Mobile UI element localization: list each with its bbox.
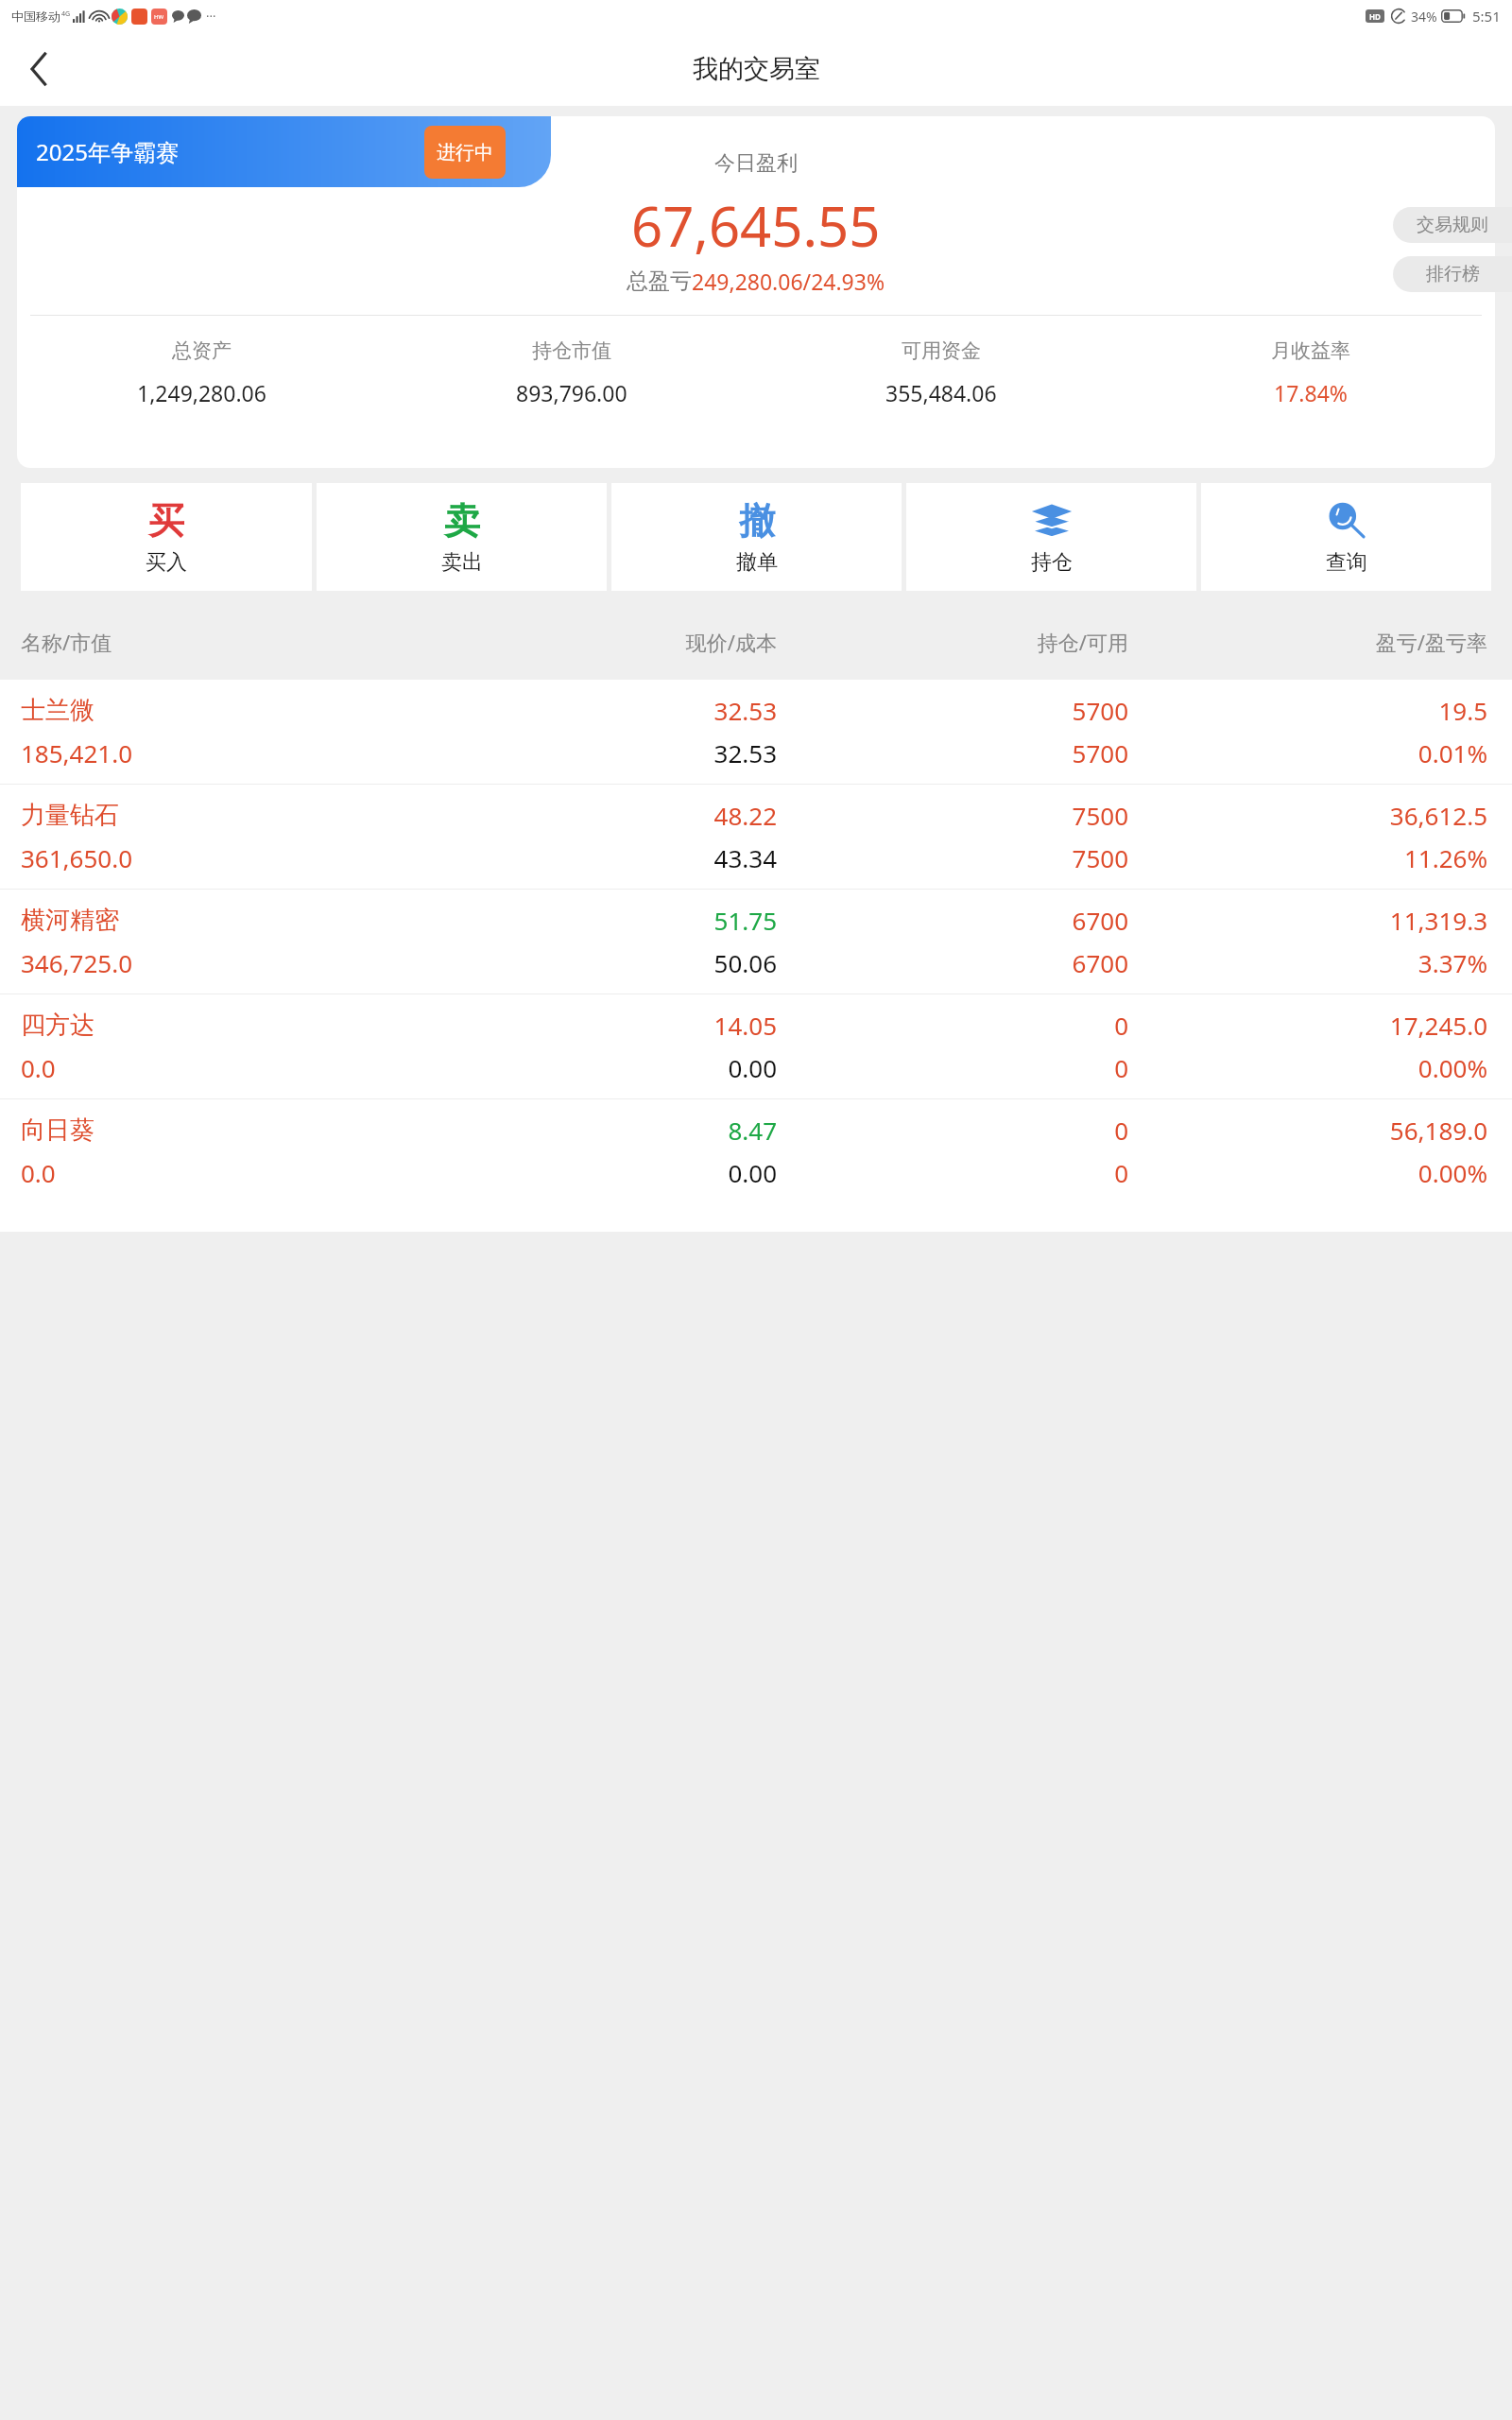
- staticText: 48.22: [418, 799, 777, 832]
- staticText: 今日盈利: [714, 150, 798, 177]
- button[interactable]: 买: [21, 483, 312, 591]
- staticText: 0: [777, 1156, 1128, 1189]
- button[interactable]: 2025年争霸赛: [17, 116, 551, 187]
- button[interactable]: 四方达: [0, 994, 1512, 1098]
- staticText: 四方达: [21, 1010, 418, 1041]
- staticText: 向日葵: [21, 1115, 418, 1146]
- staticText: 0.00: [418, 1051, 777, 1084]
- staticText: 0.0: [21, 1051, 418, 1084]
- staticText: 36,612.5: [1128, 799, 1487, 832]
- staticText: 893,796.00: [516, 378, 627, 407]
- button[interactable]: 交易规则: [1393, 207, 1512, 243]
- button[interactable]: 持仓: [906, 483, 1196, 591]
- staticText: 5700: [777, 694, 1128, 727]
- staticText: 0: [777, 1114, 1128, 1147]
- staticText: 总盈亏: [627, 268, 692, 295]
- staticText: 撤: [739, 498, 775, 544]
- staticText: 0.00%: [1128, 1156, 1487, 1189]
- staticText: 名称/市值: [21, 628, 418, 656]
- staticText: 现价/成本: [418, 628, 777, 656]
- staticText: 排行榜: [1426, 263, 1480, 285]
- button[interactable]: 撤: [611, 483, 902, 591]
- staticText: 我的交易室: [693, 53, 820, 85]
- staticText: 249,280.06/24.93%: [692, 267, 885, 296]
- staticText: 6700: [777, 946, 1128, 979]
- staticText: 0.01%: [1128, 736, 1487, 769]
- staticText: 56,189.0: [1128, 1114, 1487, 1147]
- staticText: 34%: [1411, 8, 1437, 26]
- staticText: 6700: [777, 904, 1128, 937]
- button[interactable]: Back: [17, 46, 62, 92]
- staticText: 买入: [146, 549, 187, 576]
- staticText: 11.26%: [1128, 841, 1487, 874]
- staticText: ···: [206, 8, 216, 25]
- staticText: 0.00: [418, 1156, 777, 1189]
- staticText: 11,319.3: [1128, 904, 1487, 937]
- staticText: 可用资金: [902, 338, 981, 363]
- staticText: HW: [154, 13, 164, 21]
- staticText: 4G: [61, 9, 71, 19]
- staticText: 中国移动: [11, 9, 60, 24]
- staticText: 1,249,280.06: [137, 378, 266, 407]
- staticText: 50.06: [418, 946, 777, 979]
- staticText: 0: [777, 1009, 1128, 1042]
- staticText: 2025年争霸赛: [36, 136, 179, 167]
- staticText: 17.84%: [1274, 378, 1348, 407]
- staticText: 5:51: [1472, 7, 1501, 26]
- staticText: 撤单: [736, 549, 778, 576]
- staticText: 月收益率: [1271, 338, 1350, 363]
- button[interactable]: 士兰微: [0, 680, 1512, 784]
- staticText: 5700: [777, 736, 1128, 769]
- button[interactable]: 排行榜: [1393, 256, 1512, 292]
- staticText: 19.5: [1128, 694, 1487, 727]
- staticText: 7500: [777, 799, 1128, 832]
- staticText: 67,645.55: [631, 188, 881, 263]
- staticText: 51.75: [418, 904, 777, 937]
- staticText: 进行中: [437, 141, 493, 164]
- staticText: 买: [148, 498, 184, 544]
- staticText: 持仓/可用: [777, 628, 1128, 656]
- staticText: 盈亏/盈亏率: [1128, 628, 1487, 656]
- staticText: 持仓: [1031, 549, 1073, 576]
- button[interactable]: 向日葵: [0, 1099, 1512, 1203]
- staticText: 43.34: [418, 841, 777, 874]
- staticText: 卖出: [441, 549, 483, 576]
- staticText: 士兰微: [21, 695, 418, 726]
- staticText: 力量钻石: [21, 800, 418, 831]
- button[interactable]: 横河精密: [0, 890, 1512, 994]
- staticText: 185,421.0: [21, 736, 418, 769]
- staticText: 361,650.0: [21, 841, 418, 874]
- staticText: 3.37%: [1128, 946, 1487, 979]
- staticText: 查询: [1326, 549, 1367, 576]
- staticText: 0: [777, 1051, 1128, 1084]
- staticText: 持仓市值: [532, 338, 611, 363]
- staticText: 0.0: [21, 1156, 418, 1189]
- staticText: 卖: [444, 498, 480, 544]
- staticText: 0.00%: [1128, 1051, 1487, 1084]
- staticText: 交易规则: [1417, 214, 1488, 236]
- staticText: 17,245.0: [1128, 1009, 1487, 1042]
- staticText: 横河精密: [21, 905, 418, 936]
- staticText: 346,725.0: [21, 946, 418, 979]
- staticText: 14.05: [418, 1009, 777, 1042]
- staticText: 7500: [777, 841, 1128, 874]
- button[interactable]: 查询: [1201, 483, 1491, 591]
- button[interactable]: 卖: [317, 483, 607, 591]
- staticText: 355,484.06: [885, 378, 997, 407]
- staticText: 总资产: [172, 338, 232, 363]
- staticText: 32.53: [418, 736, 777, 769]
- staticText: 8.47: [418, 1114, 777, 1147]
- button[interactable]: 力量钻石: [0, 785, 1512, 889]
- staticText: 32.53: [418, 694, 777, 727]
- staticText: HD: [1369, 11, 1381, 22]
